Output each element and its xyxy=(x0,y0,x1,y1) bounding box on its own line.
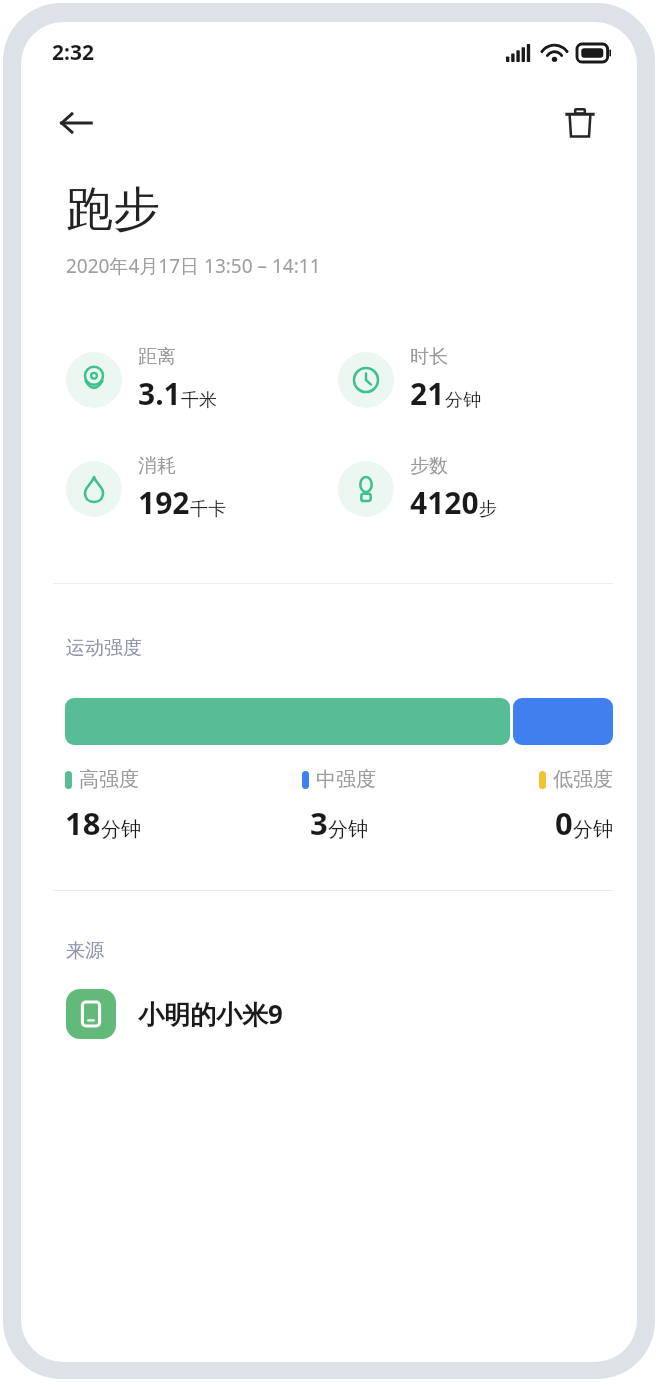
button[interactable]: 距离 xyxy=(66,345,338,414)
staticText: 2020年4月17日 13:50 – 14:11 xyxy=(66,253,321,279)
staticText: 消耗 xyxy=(138,454,176,478)
staticText: 3 xyxy=(310,802,328,844)
button[interactable]: 消耗 xyxy=(66,454,338,523)
button[interactable]: 低强度 xyxy=(430,767,613,844)
staticText: 2:32 xyxy=(52,38,94,67)
button[interactable]: 时长 xyxy=(338,345,611,414)
staticText: 跑步 xyxy=(66,180,160,239)
staticText: 0 xyxy=(555,802,573,844)
staticText: 中强度 xyxy=(316,767,376,792)
staticText: 21 xyxy=(410,373,445,414)
staticText: 3.1 xyxy=(138,373,181,414)
staticText: 来源 xyxy=(66,939,104,963)
staticText: 时长 xyxy=(410,345,448,369)
staticText: 4120 xyxy=(410,482,479,523)
button[interactable]: 高强度 xyxy=(65,767,247,844)
staticText: 步 xyxy=(479,498,497,521)
staticText: 距离 xyxy=(138,345,176,369)
button[interactable]: 小明的小米9 xyxy=(66,989,613,1039)
button[interactable]: Back xyxy=(47,94,105,152)
staticText: 小明的小米9 xyxy=(138,996,283,1032)
staticText: 运动强度 xyxy=(66,636,142,660)
button[interactable]: 步数 xyxy=(338,454,611,523)
button[interactable]: 中强度 xyxy=(247,767,430,844)
staticText: 千卡 xyxy=(190,498,226,521)
button[interactable]: Delete xyxy=(551,94,609,152)
staticText: 步数 xyxy=(410,454,448,478)
staticText: 分钟 xyxy=(101,817,141,842)
staticText: 千米 xyxy=(181,389,217,412)
staticText: 分钟 xyxy=(328,817,368,842)
staticText: 192 xyxy=(138,482,190,523)
staticText: 低强度 xyxy=(553,767,613,792)
staticText: 高强度 xyxy=(79,767,139,792)
staticText: 18 xyxy=(65,802,101,844)
staticText: 分钟 xyxy=(573,817,613,842)
staticText: 分钟 xyxy=(445,389,481,412)
